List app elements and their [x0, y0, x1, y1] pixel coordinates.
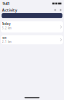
- button[interactable]: Add: [59, 9, 62, 11]
- staticText: 2.1 km: [2, 40, 11, 44]
- staticText: 5.2 km: [2, 26, 11, 30]
- button[interactable]: Tue: [0, 35, 64, 44]
- staticText: Activity: [2, 7, 17, 13]
- button[interactable]: Search: [54, 9, 56, 11]
- staticText: 9:41: [3, 1, 10, 6]
- staticText: Today: [2, 22, 10, 26]
- button[interactable]: Today: [0, 21, 64, 33]
- staticText: Tue: [2, 36, 7, 39]
- button[interactable]: [0, 13, 64, 18]
